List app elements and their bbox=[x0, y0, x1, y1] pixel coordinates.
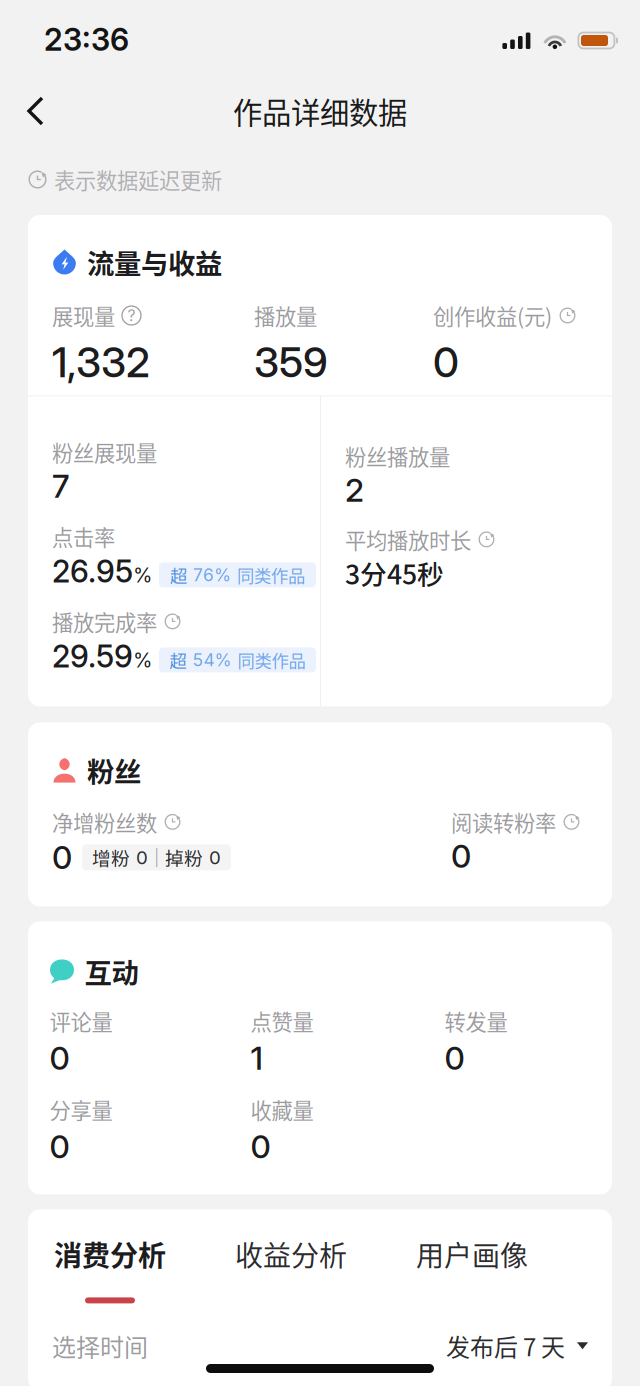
staticText: 2 bbox=[345, 471, 364, 509]
staticText: 同类作品 bbox=[237, 562, 305, 587]
staticText: 54% bbox=[192, 649, 231, 670]
staticText: 创作收益(元) bbox=[433, 300, 552, 331]
staticText: 粉丝展现量 bbox=[52, 436, 157, 467]
staticText: 0 bbox=[49, 1127, 69, 1166]
staticText: 净增粉丝数 bbox=[52, 806, 157, 837]
staticText: 评论量 bbox=[49, 1005, 112, 1036]
staticText: 7 bbox=[52, 467, 69, 505]
staticText: 增粉 bbox=[92, 844, 130, 871]
staticText: 互动 bbox=[84, 952, 138, 991]
staticText: 选择时间 bbox=[52, 1328, 148, 1363]
staticText: 26.95 bbox=[52, 553, 133, 590]
button[interactable]: 收益分析 bbox=[235, 1237, 416, 1303]
staticText: 用户画像 bbox=[416, 1234, 528, 1274]
staticText: | bbox=[154, 848, 159, 867]
staticText: 收益分析 bbox=[235, 1234, 347, 1274]
staticText: 点击率 bbox=[52, 521, 115, 552]
staticText: 1,332 bbox=[52, 337, 150, 387]
staticText: 同类作品 bbox=[237, 647, 305, 672]
staticText: 359 bbox=[254, 337, 328, 387]
staticText: 1 bbox=[250, 1039, 263, 1077]
staticText: 作品详细数据 bbox=[233, 90, 407, 132]
staticText: % bbox=[133, 563, 152, 587]
staticText: 0 bbox=[250, 1127, 270, 1166]
staticText: 0 bbox=[136, 846, 148, 869]
staticText: 3分45秒 bbox=[345, 554, 444, 592]
staticText: 展现量 bbox=[52, 300, 115, 331]
staticText: 消费分析 bbox=[54, 1234, 166, 1274]
staticText: 超 bbox=[169, 647, 186, 672]
staticText: 表示数据延迟更新 bbox=[54, 164, 222, 195]
staticText: 发布后 7 天 bbox=[446, 1328, 565, 1363]
staticText: 分享量 bbox=[49, 1094, 112, 1125]
staticText: 粉丝播放量 bbox=[345, 440, 450, 471]
staticText: 阅读转粉率 bbox=[451, 806, 556, 837]
staticText: 0 bbox=[451, 837, 471, 875]
staticText: 播放量 bbox=[254, 300, 317, 331]
staticText: 掉粉 bbox=[165, 844, 203, 871]
button[interactable]: Back bbox=[0, 81, 62, 141]
button[interactable]: 消费分析 bbox=[54, 1237, 235, 1303]
staticText: 收藏量 bbox=[250, 1094, 313, 1125]
staticText: 0 bbox=[209, 846, 221, 869]
staticText: 0 bbox=[52, 838, 72, 877]
staticText: ? bbox=[127, 306, 135, 325]
staticText: 超 bbox=[170, 562, 187, 587]
staticText: 播放完成率 bbox=[52, 606, 157, 637]
staticText: 0 bbox=[433, 337, 459, 387]
staticText: % bbox=[133, 648, 152, 672]
staticText: 平均播放时长 bbox=[345, 524, 471, 555]
staticText: 76% bbox=[193, 564, 231, 585]
button[interactable]: 用户画像 bbox=[416, 1237, 597, 1303]
staticText: 29.59 bbox=[52, 638, 133, 675]
staticText: 点赞量 bbox=[250, 1005, 313, 1036]
staticText: 0 bbox=[444, 1039, 464, 1077]
staticText: 0 bbox=[49, 1039, 69, 1077]
staticText: 转发量 bbox=[444, 1005, 507, 1036]
staticText: 粉丝 bbox=[87, 751, 141, 790]
staticText: 23:36 bbox=[44, 21, 129, 58]
button[interactable]: 发布后 7 天 bbox=[446, 1333, 588, 1359]
staticText: 流量与收益 bbox=[87, 242, 222, 282]
